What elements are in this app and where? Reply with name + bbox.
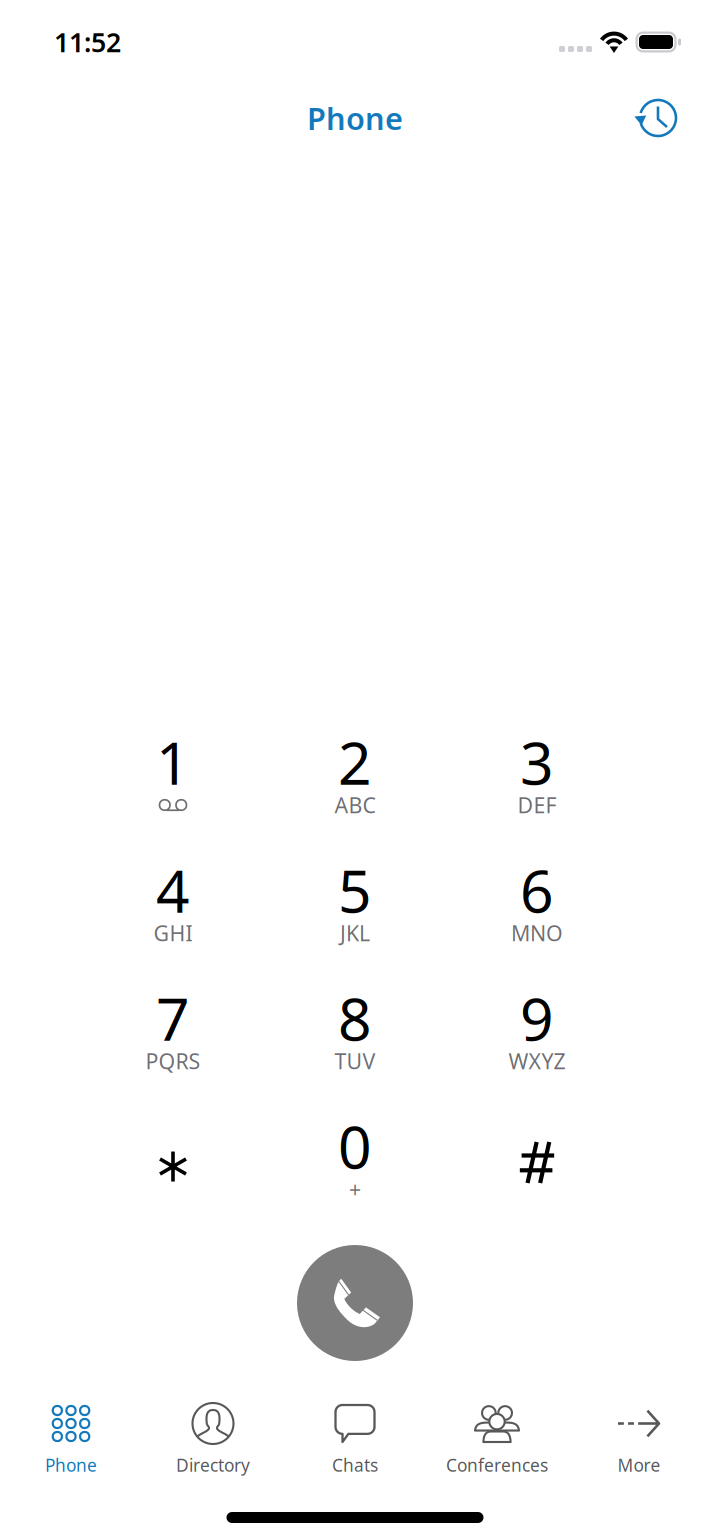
button[interactable]: Recents — [624, 84, 692, 152]
staticText: More — [617, 1453, 660, 1476]
button[interactable]: 9 — [446, 986, 628, 1072]
staticText: 8 — [338, 979, 372, 1057]
staticText: Phone — [45, 1453, 97, 1476]
button[interactable] — [82, 1114, 264, 1200]
staticText: ABC — [334, 791, 375, 819]
staticText: 7 — [156, 979, 190, 1057]
staticText: 4 — [156, 851, 190, 929]
button[interactable]: Conferences — [426, 1380, 568, 1488]
staticText: MNO — [511, 919, 563, 947]
button[interactable]: Chats — [284, 1380, 426, 1488]
staticText: 11:52 — [54, 24, 121, 60]
staticText: WXYZ — [508, 1047, 565, 1075]
staticText: 5 — [338, 851, 372, 929]
staticText: 0 — [338, 1107, 372, 1185]
staticText: DEF — [517, 791, 556, 819]
button[interactable]: 3 — [446, 730, 628, 816]
button[interactable]: 1 — [82, 730, 264, 816]
staticText: 1 — [156, 723, 190, 801]
staticText: Phone — [307, 98, 403, 138]
button[interactable]: 2 — [264, 730, 446, 816]
staticText: + — [349, 1175, 361, 1203]
button[interactable]: More — [568, 1380, 710, 1488]
staticText: Directory — [176, 1453, 250, 1476]
button[interactable]: 4 — [82, 858, 264, 944]
button[interactable]: 7 — [82, 986, 264, 1072]
button[interactable]: 6 — [446, 858, 628, 944]
staticText: 6 — [520, 851, 554, 929]
staticText: 9 — [520, 979, 554, 1057]
button[interactable]: Phone — [0, 1380, 142, 1488]
button[interactable]: 8 — [264, 986, 446, 1072]
button[interactable]: 5 — [264, 858, 446, 944]
button[interactable]: Call — [297, 1245, 413, 1361]
staticText: GHI — [153, 919, 192, 947]
button[interactable]: 0 — [264, 1114, 446, 1200]
staticText: TUV — [334, 1047, 375, 1075]
staticText: PQRS — [145, 1047, 200, 1075]
staticText: JKL — [340, 919, 370, 947]
staticText: Chats — [332, 1453, 378, 1476]
button[interactable]: Directory — [142, 1380, 284, 1488]
button[interactable] — [446, 1114, 628, 1200]
staticText: Conferences — [446, 1453, 548, 1476]
staticText: 2 — [338, 723, 372, 801]
staticText: 3 — [520, 723, 554, 801]
